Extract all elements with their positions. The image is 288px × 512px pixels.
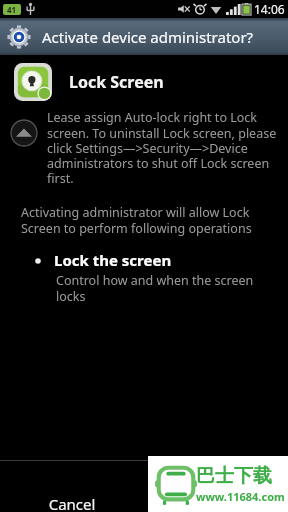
staticText: Lease assign Auto-lock right to Lock scr… <box>47 109 280 186</box>
staticText: www.11684.com <box>196 489 285 504</box>
button[interactable]: Cancel <box>0 461 288 512</box>
staticText: Activating administrator will allow Lock… <box>21 204 272 236</box>
button[interactable]: Collapse <box>10 119 38 147</box>
staticText: 41 <box>7 4 17 15</box>
staticText: Activate device administrator? <box>42 27 254 47</box>
staticText: Cancel <box>0 494 144 512</box>
staticText: Lock the screen <box>54 250 172 270</box>
staticText: Control how and when the screen locks <box>56 272 276 304</box>
staticText: 14:06 <box>254 1 285 17</box>
staticText: Lock Screen <box>69 71 164 93</box>
staticText: 巴士下载 <box>196 464 272 488</box>
